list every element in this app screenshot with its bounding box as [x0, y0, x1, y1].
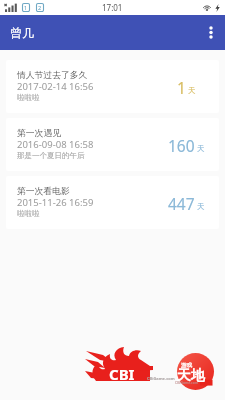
staticText: 2015-11-26 16:59 [17, 196, 94, 209]
staticText: CBiGame.com [175, 380, 199, 385]
staticText: CBI [109, 364, 135, 384]
staticText: CBiGame.com [147, 376, 175, 381]
button[interactable]: 第一次看电影 [6, 176, 219, 229]
button[interactable]: 情人节过去了多久 [6, 60, 219, 113]
staticText: 天 [188, 86, 196, 95]
staticText: 1 [177, 77, 186, 98]
staticText: 天 [197, 144, 205, 153]
staticText: 曾几 [10, 25, 34, 40]
staticText: 情人节过去了多久 [17, 70, 88, 81]
staticText: 天地 [177, 367, 205, 385]
staticText: 2016-09-08 16:58 [17, 138, 94, 151]
staticText: 1 [24, 4, 28, 11]
button[interactable]: More options [197, 15, 225, 50]
staticText: 第一次遇见 [17, 128, 61, 139]
staticText: 2 [38, 4, 42, 11]
staticText: 160 [168, 135, 195, 156]
staticText: 游戏 [181, 362, 192, 369]
staticText: 天 [197, 202, 205, 211]
staticText: 第一次看电影 [17, 186, 70, 197]
staticText: 啦啦啦 [17, 93, 40, 102]
staticText: 447 [168, 193, 195, 214]
button[interactable]: 第一次遇见 [6, 118, 219, 171]
staticText: 那是一个夏日的午后 [17, 151, 85, 160]
staticText: 17:01 [102, 2, 123, 13]
staticText: 啦啦啦 [17, 209, 40, 218]
staticText: 2017-02-14 16:56 [17, 80, 94, 93]
